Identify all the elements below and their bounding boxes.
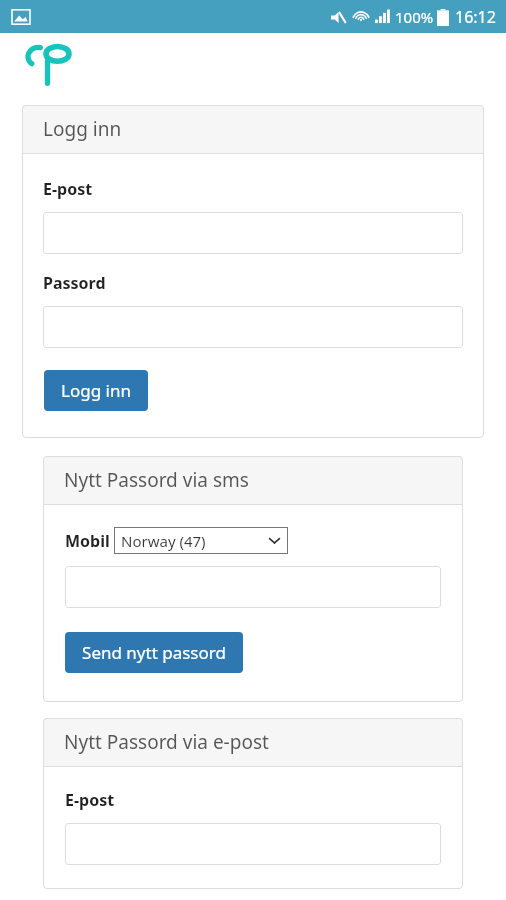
staticText: Logg inn (43, 116, 122, 142)
button[interactable] (43, 306, 463, 348)
staticText: Passord (43, 272, 106, 294)
staticText: Send nytt passord (82, 641, 226, 664)
staticText: E-post (43, 178, 93, 200)
staticText: Nytt Passord via sms (64, 467, 249, 493)
button[interactable] (65, 566, 441, 608)
button[interactable]: Logg inn (44, 370, 148, 411)
staticText: Mobil (65, 530, 110, 552)
button[interactable]: Send nytt passord (65, 632, 243, 673)
staticText: Logg inn (61, 379, 131, 402)
button[interactable]: Norway (47) (114, 527, 288, 554)
staticText: Nytt Passord via e-post (64, 729, 269, 755)
staticText: 100% (395, 7, 434, 27)
button[interactable] (65, 823, 441, 865)
staticText: Norway (47) (121, 531, 206, 551)
staticText: 16:12 (455, 6, 496, 28)
button[interactable] (43, 212, 463, 254)
staticText: E-post (65, 789, 115, 811)
